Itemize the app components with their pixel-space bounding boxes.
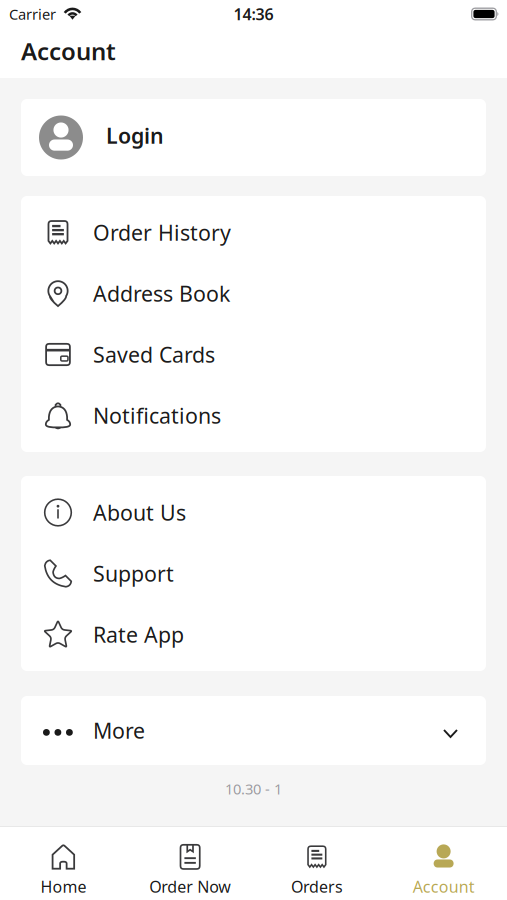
staticText: Login <box>106 121 164 150</box>
button[interactable]: Login <box>21 99 486 176</box>
staticText: More <box>93 716 145 745</box>
staticText: Rate App <box>93 620 184 649</box>
button[interactable]: Support <box>21 543 486 604</box>
button[interactable]: Account <box>380 827 507 900</box>
staticText: Notifications <box>93 401 221 430</box>
button[interactable]: Home <box>0 827 127 900</box>
staticText: Carrier <box>9 4 56 24</box>
button[interactable]: Order Now <box>127 827 254 900</box>
button[interactable]: Notifications <box>21 385 486 446</box>
staticText: Order History <box>93 218 231 247</box>
staticText: Support <box>93 559 174 588</box>
staticText: Address Book <box>93 279 230 308</box>
staticText: Order Now <box>149 876 231 897</box>
button[interactable]: Saved Cards <box>21 324 486 385</box>
staticText: 10.30 - 1 <box>225 779 282 798</box>
button[interactable]: Order History <box>21 202 486 263</box>
staticText: Home <box>40 876 86 897</box>
button[interactable]: More <box>21 696 486 765</box>
button[interactable]: About Us <box>21 482 486 543</box>
button[interactable]: Orders <box>253 827 380 900</box>
staticText: 14:36 <box>233 3 273 25</box>
staticText: Account <box>413 876 475 897</box>
button[interactable]: Address Book <box>21 263 486 324</box>
staticText: Account <box>21 35 116 67</box>
staticText: About Us <box>93 498 186 527</box>
button[interactable]: Rate App <box>21 604 486 665</box>
staticText: Saved Cards <box>93 340 215 369</box>
staticText: Orders <box>291 876 343 897</box>
